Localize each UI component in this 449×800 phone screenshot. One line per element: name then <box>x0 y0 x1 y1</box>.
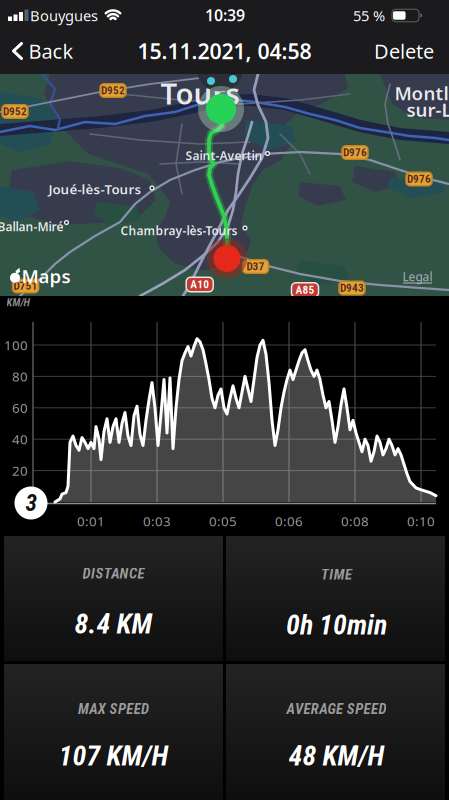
staticText: Saint-Avertin <box>185 148 262 164</box>
staticText: 0h 10min <box>286 609 387 641</box>
staticText: Back <box>28 38 73 64</box>
staticText: 0:10 <box>407 512 435 530</box>
staticText: Delete <box>374 38 434 64</box>
staticText: D943 <box>340 281 364 295</box>
staticText: Legal <box>402 268 432 284</box>
staticText: 80 <box>12 367 28 385</box>
staticText: D751 <box>14 279 38 293</box>
staticText: sur-Lo <box>406 97 449 122</box>
staticText: Montlou <box>394 81 449 105</box>
staticText: D37 <box>246 260 264 273</box>
staticText: 0:08 <box>341 512 369 530</box>
staticText: A85 <box>295 283 314 297</box>
staticText: DISTANCE <box>83 565 144 582</box>
staticText: D952 <box>3 105 27 118</box>
staticText: TIME <box>321 566 352 583</box>
staticText: MAX SPEED <box>78 700 149 718</box>
staticText: 0:01 <box>77 512 105 530</box>
staticText: 0:05 <box>209 512 237 530</box>
staticText: 107 KM/H <box>58 740 168 772</box>
staticText: 100 <box>4 336 28 354</box>
staticText: D952 <box>101 84 125 97</box>
staticText: 60 <box>12 399 28 417</box>
staticText: 55 % <box>353 6 385 25</box>
staticText: Bouygues <box>30 6 98 25</box>
staticText: 0:06 <box>275 512 303 530</box>
staticText: 0:03 <box>143 512 171 530</box>
staticText: KM/H <box>6 296 29 309</box>
staticText: Maps <box>21 264 70 288</box>
button[interactable]: Legal <box>402 269 432 285</box>
staticText: 48 KM/H <box>288 740 384 772</box>
staticText: Ballan-Miré <box>0 218 63 234</box>
staticText: 15.11.2021, 04:58 <box>137 37 311 65</box>
staticText: A10 <box>190 278 209 291</box>
staticText: 3 <box>25 489 36 517</box>
staticText: Tours <box>160 73 239 112</box>
staticText: 20 <box>12 462 28 479</box>
staticText: 10:39 <box>205 4 245 26</box>
staticText: D976 <box>407 172 431 186</box>
staticText: 8.4 KM <box>74 608 152 640</box>
button[interactable]: Back <box>0 28 84 74</box>
staticText: AVERAGE SPEED <box>287 700 386 718</box>
staticText: D976 <box>343 146 367 159</box>
staticText: 40 <box>12 430 28 448</box>
staticText: Joué-lès-Tours <box>48 180 141 198</box>
staticText: Chambray-lès-Tours <box>120 222 237 238</box>
button[interactable]: Delete <box>366 28 442 74</box>
